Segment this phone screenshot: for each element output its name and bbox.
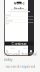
staticText: no card required <box>5 63 34 69</box>
button[interactable]: Tab <box>13 50 25 53</box>
button[interactable]: Tab <box>1 50 13 53</box>
staticText: Continue <box>11 41 26 46</box>
staticText: Acme Studio <box>13 0 24 11</box>
staticText: Start your free trial today <box>3 51 36 62</box>
button[interactable]: Continue <box>0 41 39 45</box>
button[interactable]: Tab <box>25 50 37 53</box>
